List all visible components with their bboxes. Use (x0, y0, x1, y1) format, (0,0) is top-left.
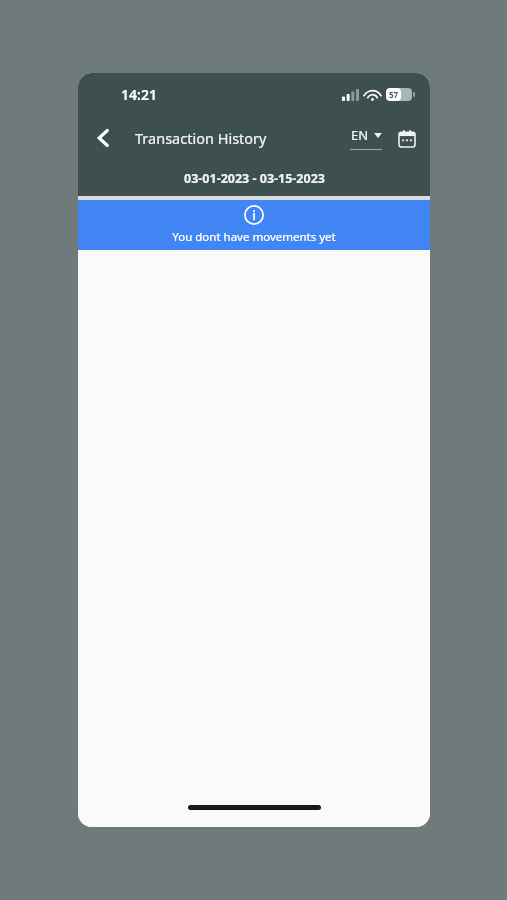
staticText: EN (351, 126, 369, 144)
staticText: 57 (389, 89, 399, 100)
button[interactable]: EN (350, 126, 382, 150)
staticText: 03-01-2023 - 03-15-2023 (184, 170, 325, 187)
button[interactable]: Back (86, 121, 120, 155)
staticText: Transaction History (135, 128, 267, 148)
staticText: You dont have movements yet (172, 229, 336, 245)
staticText: 14:21 (121, 85, 157, 104)
button[interactable]: Pick date range (392, 123, 422, 153)
button[interactable]: You dont have movements yet (78, 200, 430, 250)
